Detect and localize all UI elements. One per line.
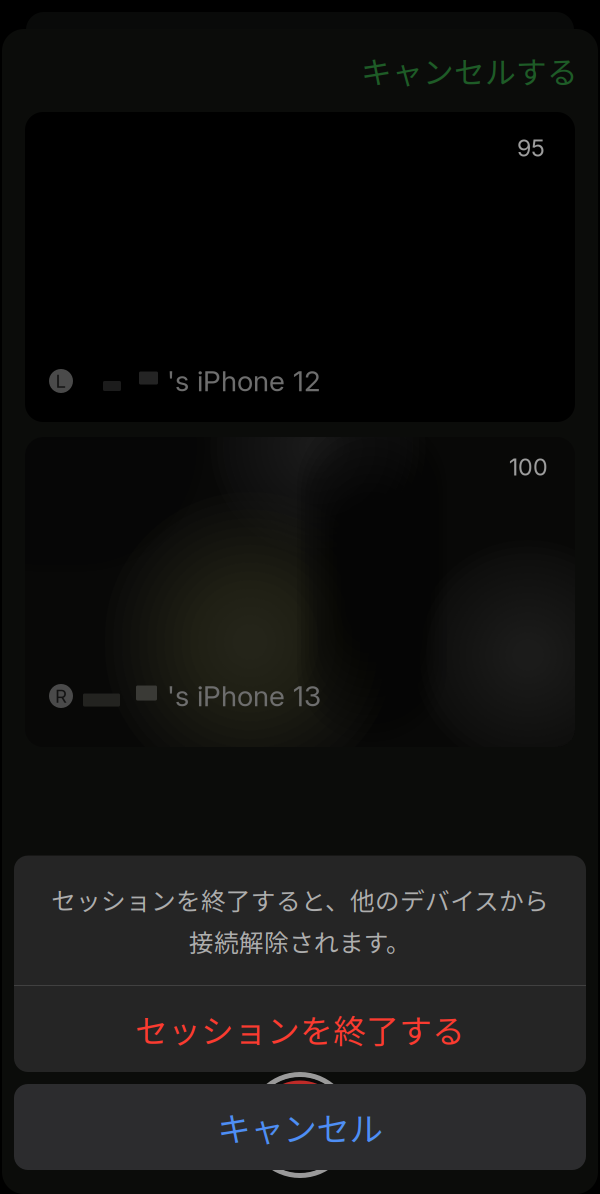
staticText: 's iPhone 12 xyxy=(167,364,321,398)
staticText: キャンセル xyxy=(217,1103,382,1151)
staticText: キャンセルする xyxy=(361,48,578,93)
button[interactable]: セッションを終了する xyxy=(14,986,586,1072)
button[interactable]: キャンセル xyxy=(14,1084,586,1170)
staticText: セッションを終了すると、他のデバイスから xyxy=(51,882,549,917)
staticText: 95 xyxy=(517,134,545,162)
staticText: R xyxy=(55,685,67,707)
staticText: L xyxy=(55,370,66,392)
staticText: 100 xyxy=(509,453,548,481)
staticText: セッションを終了する xyxy=(135,1005,465,1053)
staticText: 's iPhone 13 xyxy=(167,679,321,713)
staticText: 接続解除されます。 xyxy=(189,923,411,959)
button[interactable]: キャンセルする xyxy=(361,11,600,101)
